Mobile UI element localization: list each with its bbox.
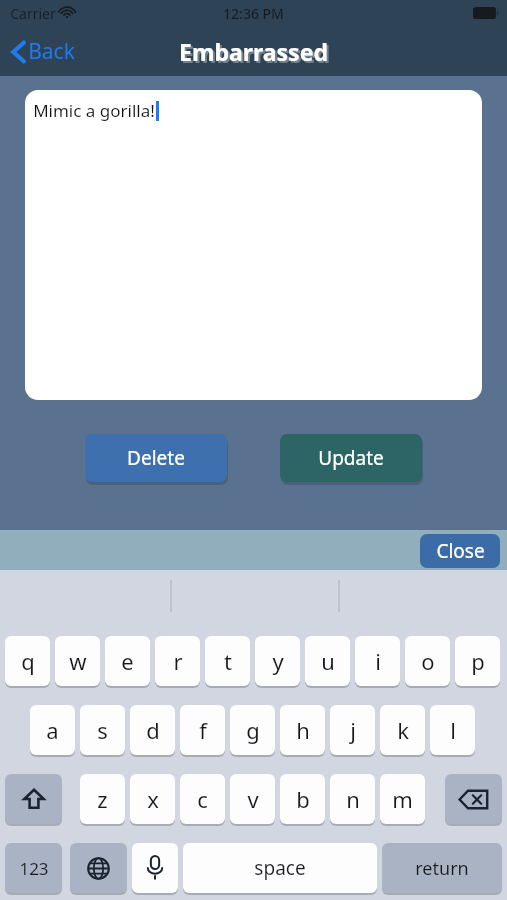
button[interactable]: w (55, 636, 100, 686)
button[interactable]: m (380, 774, 425, 824)
button[interactable]: j (330, 705, 375, 755)
staticText: r (173, 646, 183, 676)
staticText: y (272, 646, 284, 676)
button[interactable]: o (405, 636, 450, 686)
button[interactable]: f (180, 705, 225, 755)
button[interactable]: Next keyboard (70, 843, 127, 893)
staticText: c (197, 784, 208, 814)
staticText: p (471, 646, 485, 676)
staticText: d (146, 715, 160, 745)
staticText: 123 (19, 857, 49, 880)
staticText: a (46, 715, 59, 745)
staticText: space (254, 855, 306, 881)
staticText: g (246, 715, 260, 745)
button[interactable]: b (280, 774, 325, 824)
button[interactable]: a (30, 705, 75, 755)
button[interactable]: Delete (85, 434, 227, 482)
staticText: h (296, 715, 310, 745)
staticText: i (375, 646, 381, 676)
button[interactable]: n (330, 774, 375, 824)
staticText: t (224, 646, 232, 676)
staticText: Embarrassed (179, 36, 328, 67)
button[interactable]: Mimic a gorilla! (25, 90, 482, 400)
staticText: w (69, 646, 87, 676)
button[interactable]: space (183, 843, 377, 893)
button[interactable]: Backspace (445, 774, 502, 824)
staticText: 12:36 PM (223, 4, 284, 23)
button[interactable]: r (155, 636, 200, 686)
button[interactable]: 123 (5, 843, 62, 893)
staticText: k (397, 715, 409, 745)
staticText: Embarrassed (181, 38, 330, 69)
staticText: Carrier (10, 4, 56, 23)
button[interactable]: t (205, 636, 250, 686)
button[interactable]: v (230, 774, 275, 824)
staticText: Mimic a gorilla! (33, 99, 155, 122)
button[interactable]: Back (0, 31, 87, 72)
button[interactable]: h (280, 705, 325, 755)
staticText: e (121, 646, 134, 676)
staticText: l (450, 715, 456, 745)
button[interactable]: q (5, 636, 50, 686)
button[interactable]: Shift (5, 774, 62, 824)
staticText: o (421, 646, 435, 676)
staticText: Close (436, 538, 485, 564)
staticText: x (147, 784, 159, 814)
staticText: return (415, 856, 469, 881)
button[interactable]: g (230, 705, 275, 755)
staticText: Back (28, 37, 75, 66)
button[interactable]: Close (420, 534, 500, 568)
button[interactable]: y (255, 636, 300, 686)
button[interactable]: Dictation (132, 843, 178, 893)
staticText: Delete (127, 445, 185, 471)
staticText: b (296, 784, 310, 814)
button[interactable]: x (130, 774, 175, 824)
staticText: u (321, 646, 335, 676)
staticText: j (350, 715, 356, 745)
button[interactable]: k (380, 705, 425, 755)
staticText: q (21, 646, 35, 676)
button[interactable]: z (80, 774, 125, 824)
staticText: z (97, 784, 108, 814)
staticText: f (199, 715, 207, 745)
staticText: m (392, 784, 413, 814)
button[interactable]: e (105, 636, 150, 686)
button[interactable]: s (80, 705, 125, 755)
button[interactable]: return (382, 843, 502, 893)
staticText: n (346, 784, 360, 814)
staticText: v (247, 784, 259, 814)
button[interactable]: l (430, 705, 475, 755)
staticText: Update (318, 445, 384, 471)
staticText: s (97, 715, 108, 745)
button[interactable]: p (455, 636, 500, 686)
button[interactable]: i (355, 636, 400, 686)
button[interactable]: c (180, 774, 225, 824)
button[interactable]: u (305, 636, 350, 686)
button[interactable]: Update (280, 434, 422, 482)
button[interactable]: d (130, 705, 175, 755)
